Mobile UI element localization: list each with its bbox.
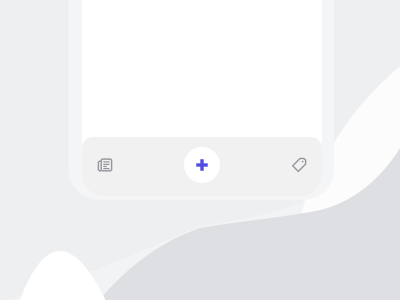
button[interactable]: Add — [184, 147, 220, 183]
button[interactable]: Tags — [276, 137, 322, 193]
button[interactable]: Feed — [82, 137, 128, 193]
